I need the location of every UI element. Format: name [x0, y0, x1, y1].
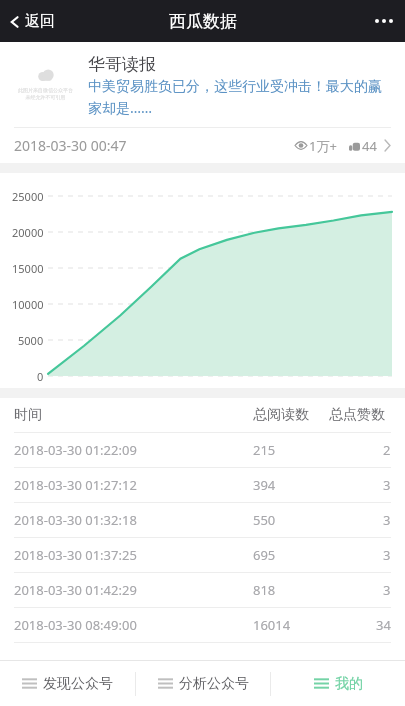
button[interactable]: 2018-03-30 08:49:00 — [0, 608, 405, 642]
button[interactable]: 返回 — [0, 8, 65, 35]
button[interactable]: 此图片来自微信公众平台 未经允许不可引用 — [0, 42, 405, 127]
staticText: 15000 — [12, 261, 44, 276]
staticText: 25000 — [12, 189, 44, 204]
staticText: 总点赞数 — [329, 406, 385, 424]
staticText: 3 — [383, 546, 391, 564]
staticText: 3 — [383, 476, 391, 494]
button[interactable]: More options — [363, 9, 405, 33]
staticText: 此图片来自微信公众平台 未经允许不可引用 — [18, 87, 73, 101]
staticText: 2018-03-30 01:37:25 — [14, 546, 137, 564]
button[interactable]: 2018-03-30 01:27:12 — [0, 468, 405, 502]
staticText: 西瓜数据 — [169, 11, 237, 32]
staticText: 2018-03-30 01:27:12 — [14, 476, 137, 494]
staticText: 818 — [253, 581, 276, 599]
staticText: 2018-03-30 00:47 — [14, 136, 127, 155]
staticText: 华哥读报 — [88, 54, 156, 75]
staticText: 2018-03-30 01:32:18 — [14, 511, 137, 529]
button[interactable]: 2018-03-30 01:22:09 — [0, 433, 405, 467]
staticText: 2018-03-30 01:22:09 — [14, 441, 137, 459]
staticText: 0 — [37, 369, 44, 384]
staticText: 10000 — [12, 297, 44, 312]
staticText: 返回 — [25, 12, 55, 31]
button[interactable]: 分析公众号 — [136, 661, 270, 706]
staticText: 2018-03-30 01:42:29 — [14, 581, 137, 599]
button[interactable]: 2018-03-30 01:32:18 — [0, 503, 405, 537]
staticText: 我的 — [335, 675, 363, 693]
staticText: 695 — [253, 546, 276, 564]
staticText: 时间 — [14, 406, 42, 424]
staticText: 2 — [383, 441, 391, 459]
button[interactable]: 2018-03-30 00:47 — [0, 128, 405, 163]
staticText: 394 — [253, 476, 276, 494]
button[interactable]: 发现公众号 — [0, 661, 135, 706]
staticText: 总阅读数 — [253, 406, 309, 424]
button[interactable]: 2018-03-30 01:42:29 — [0, 573, 405, 607]
staticText: 中美贸易胜负已分，这些行业受冲击！最大的赢家却是…… — [88, 78, 391, 117]
staticText: 3 — [383, 581, 391, 599]
staticText: 44 — [362, 137, 377, 155]
staticText: 1万+ — [309, 137, 337, 155]
button[interactable]: 2018-03-30 01:37:25 — [0, 538, 405, 572]
staticText: 215 — [253, 441, 276, 459]
staticText: 3 — [383, 511, 391, 529]
staticText: 34 — [376, 616, 391, 634]
staticText: 20000 — [12, 225, 44, 240]
staticText: 16014 — [253, 616, 291, 634]
button[interactable]: 我的 — [271, 661, 405, 706]
staticText: 5000 — [18, 333, 44, 348]
staticText: 分析公众号 — [179, 675, 249, 693]
staticText: 发现公众号 — [43, 675, 113, 693]
staticText: 550 — [253, 511, 276, 529]
staticText: 2018-03-30 08:49:00 — [14, 616, 137, 634]
